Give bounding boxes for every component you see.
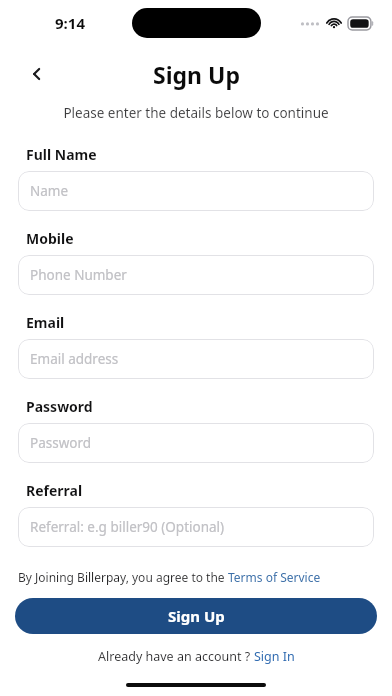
button[interactable]: Email address (18, 339, 374, 379)
staticText: Referral (26, 481, 83, 500)
button[interactable]: Terms of Service (228, 569, 321, 585)
staticText: Password (30, 434, 92, 452)
staticText: Already have an account ? (98, 648, 254, 665)
button[interactable]: Name (18, 171, 374, 211)
button[interactable]: Password (18, 423, 374, 463)
staticText: Email (26, 313, 65, 332)
button[interactable]: Referral: e.g biller90 (Optional) (18, 507, 374, 547)
staticText: Mobile (26, 229, 74, 248)
button[interactable]: Back (20, 57, 54, 91)
staticText: Terms of Service (228, 569, 321, 585)
staticText: Referral: e.g biller90 (Optional) (30, 518, 225, 536)
staticText: Password (26, 397, 93, 416)
staticText: Phone Number (30, 266, 127, 284)
staticText: Sign Up (153, 59, 240, 90)
staticText: Sign In (254, 648, 295, 665)
staticText: Sign Up (168, 606, 225, 626)
staticText: Full Name (26, 145, 97, 164)
button[interactable]: Phone Number (18, 255, 374, 295)
staticText: 9:14 (55, 13, 85, 33)
button[interactable]: Sign Up (15, 598, 377, 634)
staticText: Name (30, 182, 69, 200)
staticText: By Joining Billerpay, you agree to the (18, 569, 228, 585)
staticText: Please enter the details below to contin… (0, 104, 392, 122)
button[interactable]: Sign In (254, 648, 295, 665)
staticText: Email address (30, 350, 119, 368)
